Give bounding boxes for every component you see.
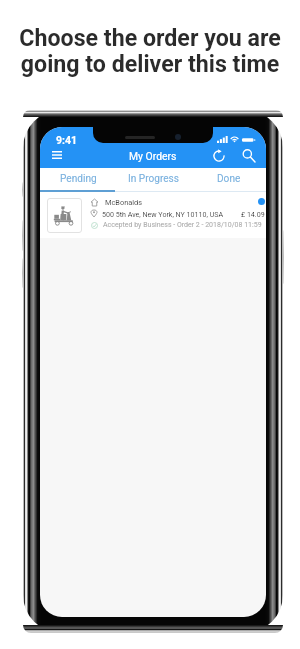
- button[interactable]: In Progress: [116, 168, 191, 192]
- button[interactable]: Pending: [40, 168, 116, 192]
- staticText: £ 14.09: [241, 210, 265, 218]
- staticText: 9:41: [56, 134, 78, 146]
- staticText: In Progress: [128, 173, 180, 185]
- staticText: My Orders: [129, 150, 177, 162]
- button[interactable]: Refresh: [209, 146, 229, 166]
- button[interactable]: Menu: [48, 146, 66, 164]
- staticText: 500 5th Ave, New York, NY 10110, USA: [102, 210, 224, 218]
- staticText: Done: [217, 173, 241, 185]
- staticText: McBonalds: [105, 198, 143, 207]
- button[interactable]: Search: [239, 146, 259, 166]
- staticText: Choose the order you are going to delive…: [19, 24, 281, 77]
- button[interactable]: McBonalds: [40, 192, 266, 238]
- staticText: Accepted by Business - Order 2 - 2018/10…: [103, 221, 262, 229]
- staticText: Pending: [60, 173, 97, 185]
- button[interactable]: Done: [191, 168, 266, 192]
